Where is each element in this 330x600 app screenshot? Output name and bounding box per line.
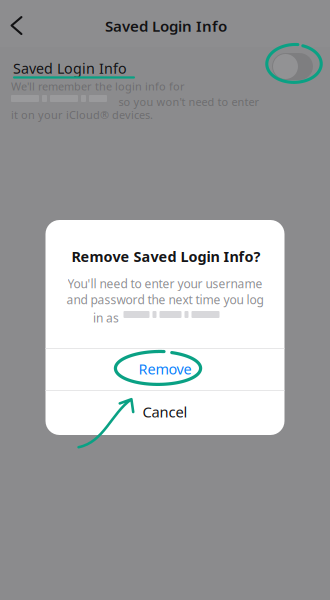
button[interactable]: Saved Login Info — [272, 53, 313, 80]
staticText: Saved Login Info — [105, 16, 227, 36]
staticText: so you won't need to enter — [118, 94, 259, 109]
staticText: Cancel — [142, 402, 187, 422]
button[interactable]: Cancel — [45, 390, 284, 434]
staticText: You'll need to enter your username — [67, 275, 262, 292]
staticText: in as — [93, 310, 119, 326]
staticText: and password the next time you log — [66, 291, 263, 308]
button[interactable]: Remove — [45, 348, 284, 390]
staticText: Saved Login Info — [13, 58, 127, 78]
staticText: it on your iCloud® devices. — [11, 107, 153, 122]
button[interactable]: Back — [0, 0, 42, 44]
staticText: Remove Saved Login Info? — [71, 247, 260, 266]
staticText: We'll remember the login info for — [11, 79, 185, 94]
staticText: Remove — [138, 359, 191, 379]
